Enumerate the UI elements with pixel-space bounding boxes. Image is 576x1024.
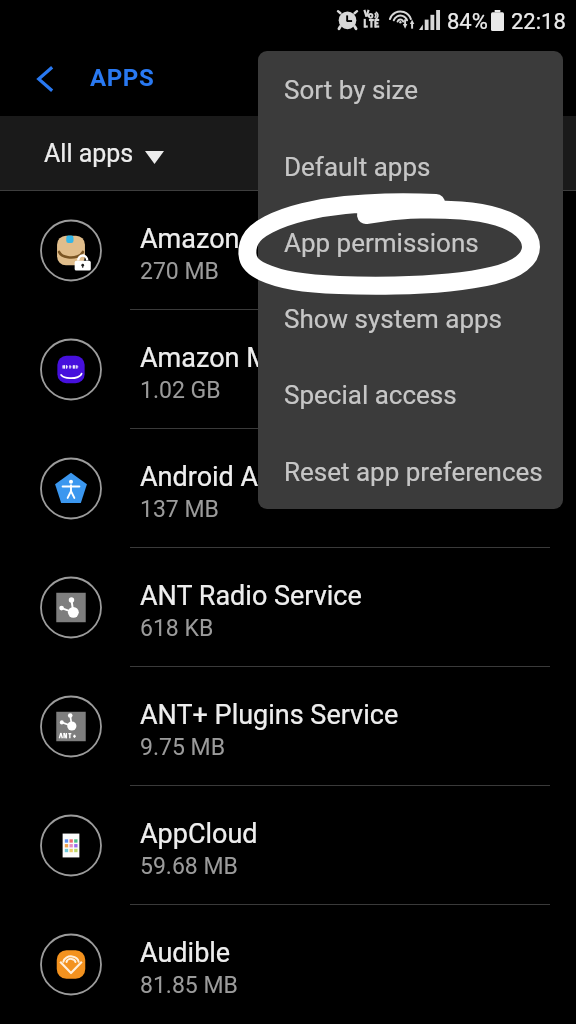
button[interactable]: ANT Radio Service (0, 548, 576, 667)
staticText: Sort by size (284, 75, 419, 105)
staticText: 81.85 MB (140, 972, 238, 999)
staticText: Audible (140, 937, 231, 969)
button[interactable]: Amazon (0, 191, 576, 310)
staticText: ANT Radio Service (140, 580, 362, 612)
button[interactable]: All apps (0, 116, 576, 191)
button[interactable]: ANT+ Plugins Service (0, 667, 576, 786)
button[interactable]: AppCloud (0, 786, 576, 905)
staticText: 270 MB (140, 258, 219, 285)
staticText: 137 MB (140, 496, 219, 523)
staticText: AppCloud (140, 818, 258, 850)
staticText: Amazon Music (140, 342, 320, 374)
staticText: Reset app preferences (284, 457, 543, 487)
button[interactable]: Audible (0, 905, 576, 1024)
staticText: 22:18 (511, 9, 566, 35)
button[interactable]: Default apps (258, 139, 563, 195)
button[interactable]: Sort by size (258, 62, 563, 118)
staticText: ANT+ Plugins Service (140, 699, 399, 731)
staticText: Special access (284, 380, 457, 410)
staticText: All apps (44, 139, 134, 168)
button[interactable]: Navigate up (16, 49, 76, 109)
staticText: 59.68 MB (140, 853, 238, 880)
button[interactable]: App permissions (258, 215, 563, 271)
staticText: Amazon (140, 223, 240, 255)
button[interactable]: Android Accessibility Suite (0, 429, 576, 548)
button[interactable]: Show system apps (258, 291, 563, 347)
button[interactable]: Amazon Music (0, 310, 576, 429)
staticText: 9.75 MB (140, 734, 225, 761)
staticText: Show system apps (284, 304, 503, 334)
staticText: 1.02 GB (140, 377, 221, 404)
staticText: APPS (90, 64, 155, 92)
staticText: Default apps (284, 152, 431, 182)
staticText: 84% (447, 9, 488, 35)
button[interactable]: Special access (258, 367, 563, 423)
staticText: App permissions (284, 228, 479, 258)
button[interactable]: Reset app preferences (258, 444, 563, 500)
staticText: Android Accessibility Suite (140, 461, 459, 493)
staticText: 618 KB (140, 615, 214, 642)
